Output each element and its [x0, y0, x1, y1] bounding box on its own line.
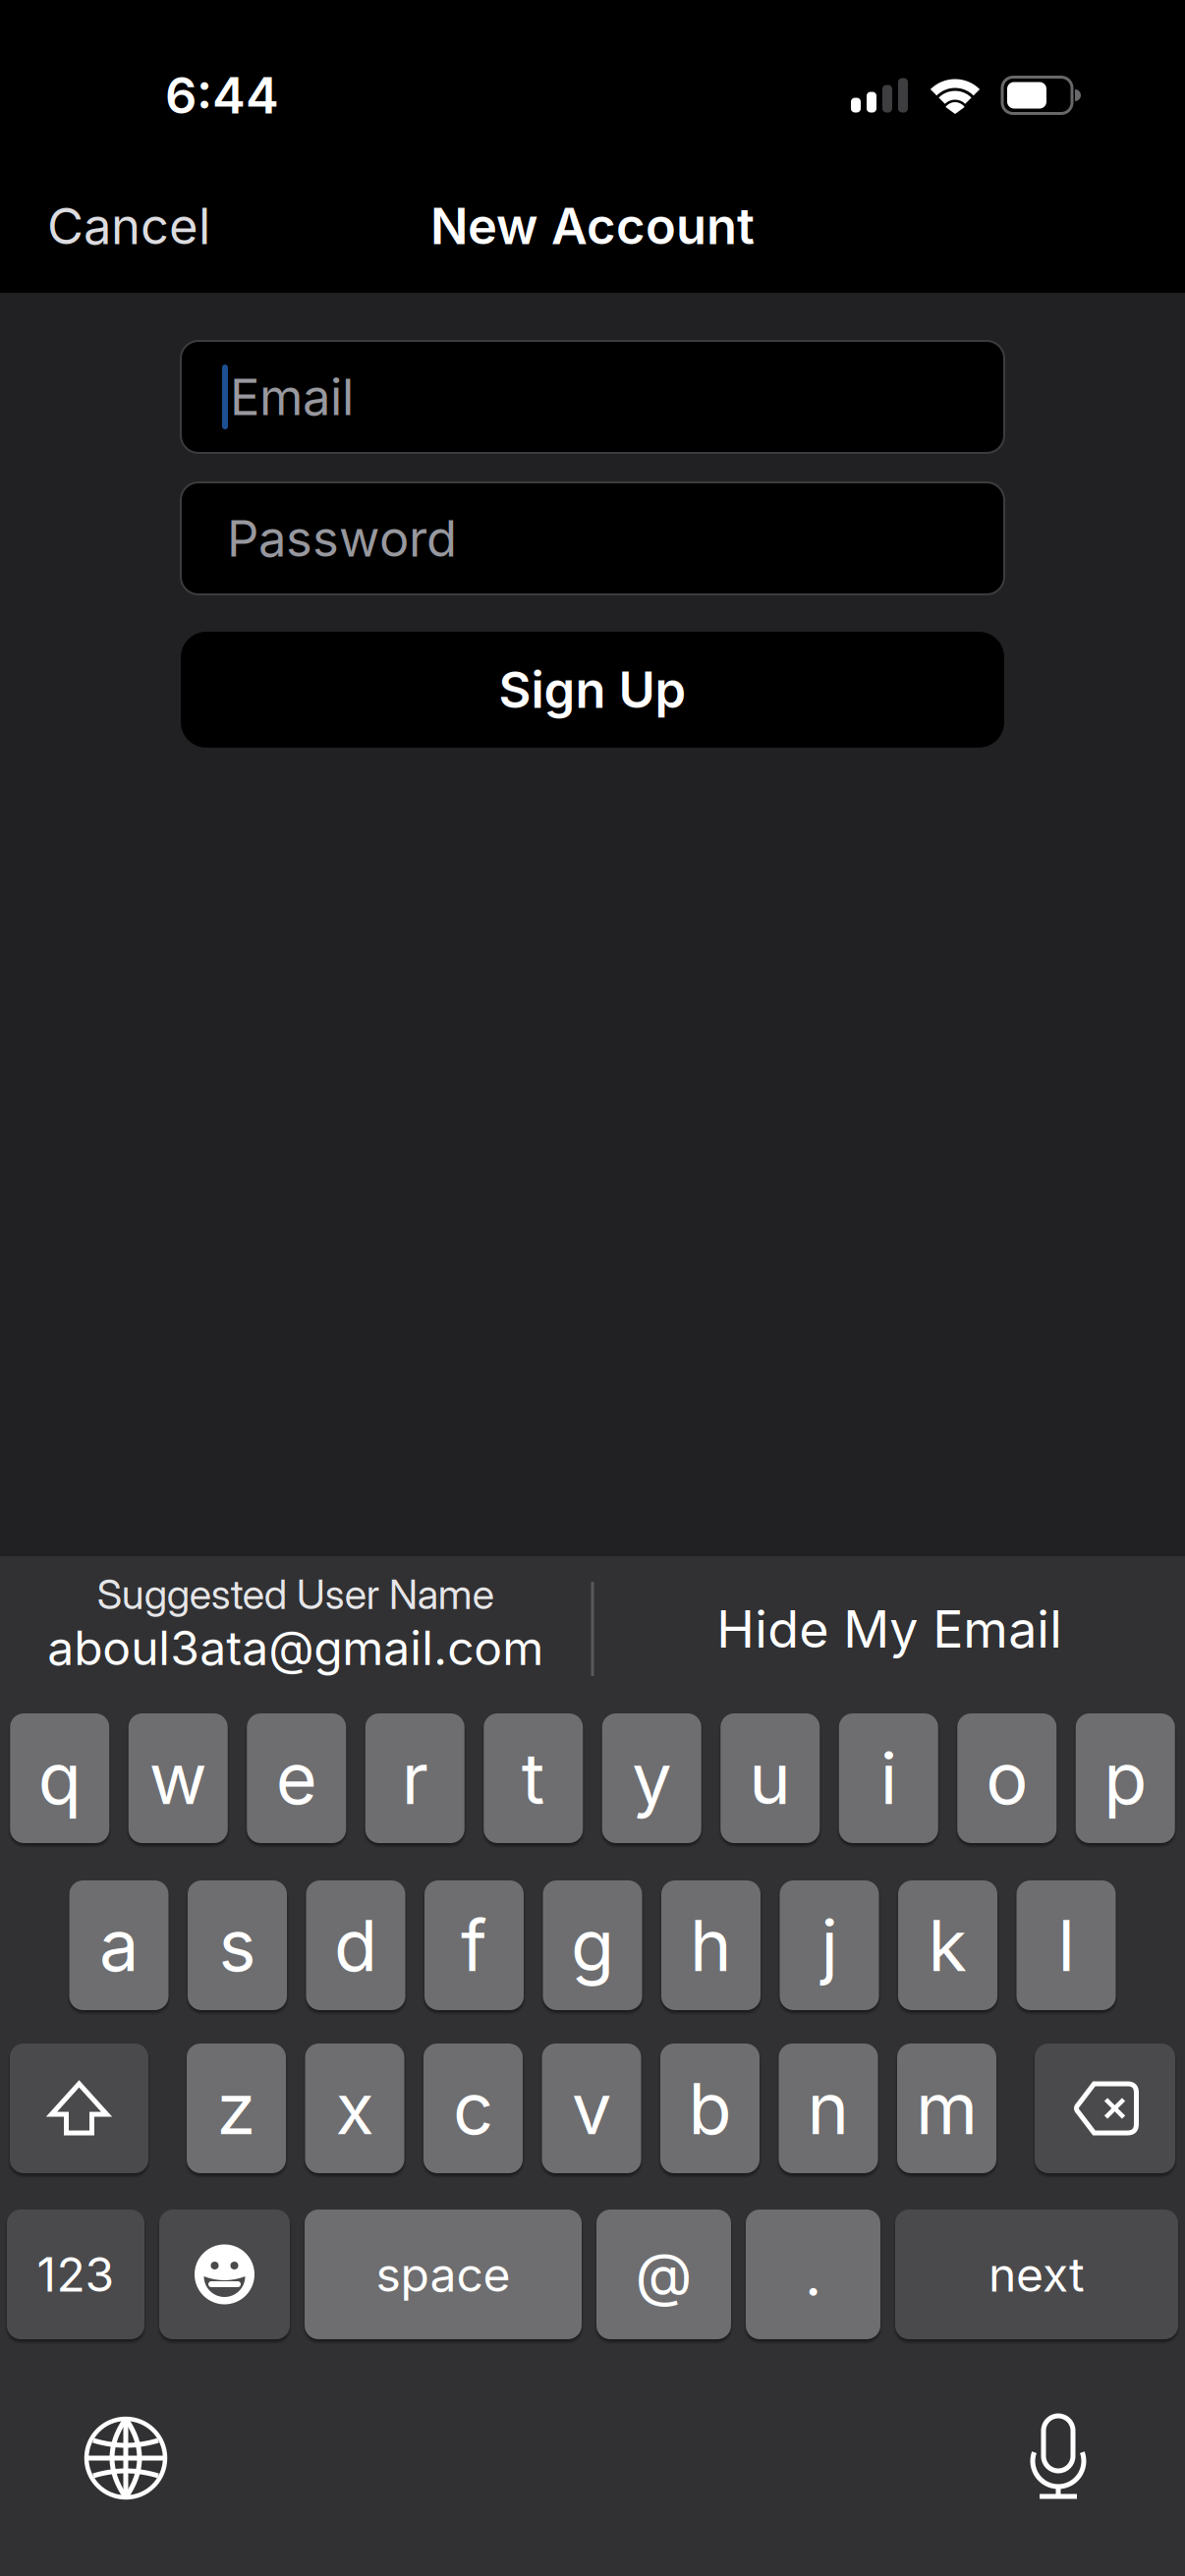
staticText: w: [149, 1736, 207, 1820]
button[interactable]: y: [602, 1713, 701, 1843]
button[interactable]: t: [484, 1713, 583, 1843]
staticText: n: [807, 2067, 849, 2150]
button[interactable]: n: [779, 2044, 878, 2173]
staticText: Hide My Email: [717, 1599, 1062, 1659]
staticText: g: [571, 1904, 614, 1987]
staticText: m: [916, 2067, 978, 2150]
staticText: r: [402, 1736, 428, 1820]
staticText: y: [632, 1736, 671, 1820]
button[interactable]: .: [746, 2210, 880, 2339]
button[interactable]: space: [305, 2210, 582, 2339]
staticText: q: [38, 1736, 81, 1820]
button[interactable]: Hide My Email: [594, 1599, 1185, 1659]
staticText: e: [276, 1736, 317, 1820]
staticText: x: [336, 2067, 374, 2150]
button[interactable]: q: [10, 1713, 109, 1843]
staticText: t: [522, 1736, 545, 1820]
button[interactable]: Dictation: [1034, 2416, 1083, 2500]
button[interactable]: z: [187, 2044, 286, 2173]
button[interactable]: Shift: [10, 2044, 148, 2173]
button[interactable]: f: [424, 1880, 524, 2010]
staticText: New Account: [430, 197, 755, 255]
button[interactable]: Email: [181, 341, 1004, 453]
staticText: Cancel: [47, 197, 210, 255]
staticText: c: [453, 2067, 493, 2150]
button[interactable]: e: [247, 1713, 346, 1843]
button[interactable]: 123: [7, 2210, 144, 2339]
staticText: k: [928, 1904, 967, 1987]
staticText: 6:44: [165, 66, 279, 125]
button[interactable]: Suggested User Name: [0, 1576, 591, 1682]
staticText: p: [1104, 1736, 1147, 1820]
button[interactable]: Delete: [1035, 2044, 1175, 2173]
button[interactable]: Sign Up: [181, 632, 1004, 748]
button[interactable]: h: [661, 1880, 761, 2010]
button[interactable]: o: [957, 1713, 1056, 1843]
button[interactable]: u: [720, 1713, 820, 1843]
staticText: Password: [227, 509, 457, 568]
staticText: s: [219, 1904, 256, 1987]
staticText: z: [217, 2067, 256, 2150]
button[interactable]: d: [306, 1880, 405, 2010]
staticText: v: [572, 2067, 611, 2150]
button[interactable]: i: [839, 1713, 938, 1843]
button[interactable]: @: [596, 2210, 731, 2339]
button[interactable]: j: [780, 1880, 879, 2010]
staticText: Email: [230, 368, 354, 426]
button[interactable]: m: [897, 2044, 996, 2173]
button[interactable]: c: [423, 2044, 523, 2173]
button[interactable]: s: [188, 1880, 287, 2010]
staticText: h: [690, 1904, 732, 1987]
staticText: b: [688, 2067, 732, 2150]
button[interactable]: p: [1076, 1713, 1175, 1843]
staticText: o: [986, 1736, 1028, 1820]
staticText: 123: [37, 2247, 114, 2302]
button[interactable]: g: [543, 1880, 642, 2010]
staticText: j: [821, 1904, 838, 1987]
button[interactable]: x: [305, 2044, 404, 2173]
button[interactable]: Next keyboard: [85, 2417, 167, 2499]
staticText: u: [749, 1736, 791, 1820]
staticText: f: [461, 1904, 487, 1987]
staticText: aboul3ata@gmail.com: [47, 1620, 544, 1676]
staticText: i: [880, 1736, 897, 1820]
staticText: @: [635, 2240, 692, 2309]
button[interactable]: l: [1016, 1880, 1116, 2010]
button[interactable]: Emoji: [159, 2210, 290, 2339]
staticText: space: [376, 2247, 510, 2302]
button[interactable]: r: [365, 1713, 465, 1843]
button[interactable]: Password: [181, 482, 1004, 594]
staticText: .: [805, 2240, 821, 2309]
button[interactable]: w: [129, 1713, 228, 1843]
staticText: l: [1058, 1904, 1074, 1987]
button[interactable]: next: [895, 2210, 1178, 2339]
button[interactable]: b: [660, 2044, 760, 2173]
staticText: next: [988, 2247, 1085, 2302]
button[interactable]: a: [69, 1880, 169, 2010]
staticText: Suggested User Name: [97, 1570, 494, 1618]
staticText: Sign Up: [499, 660, 686, 719]
button[interactable]: Cancel: [0, 197, 210, 255]
staticText: a: [99, 1904, 139, 1987]
button[interactable]: k: [898, 1880, 997, 2010]
staticText: d: [334, 1904, 377, 1987]
button[interactable]: v: [542, 2044, 641, 2173]
